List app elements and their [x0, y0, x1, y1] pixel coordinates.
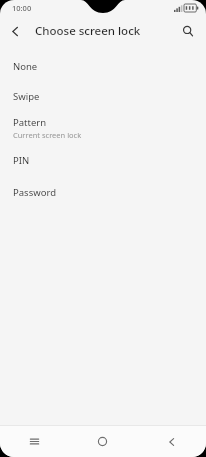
- button[interactable]: Password: [0, 176, 206, 208]
- staticText: None: [13, 60, 38, 73]
- staticText: 10:00: [12, 3, 32, 13]
- staticText: Choose screen lock: [35, 23, 141, 39]
- button[interactable]: Search: [173, 16, 203, 46]
- button[interactable]: Home: [68, 426, 137, 457]
- staticText: Swipe: [13, 90, 40, 103]
- button[interactable]: None: [0, 53, 206, 80]
- staticText: PIN: [13, 154, 30, 167]
- button[interactable]: Pattern: [0, 112, 206, 144]
- staticText: Pattern: [13, 116, 47, 129]
- button[interactable]: Recent apps: [0, 426, 68, 457]
- button[interactable]: PIN: [0, 144, 206, 176]
- staticText: Current screen lock: [13, 130, 82, 140]
- button[interactable]: Back: [0, 16, 30, 46]
- staticText: Password: [13, 186, 56, 199]
- button[interactable]: Back: [137, 426, 206, 457]
- button[interactable]: Swipe: [0, 80, 206, 112]
